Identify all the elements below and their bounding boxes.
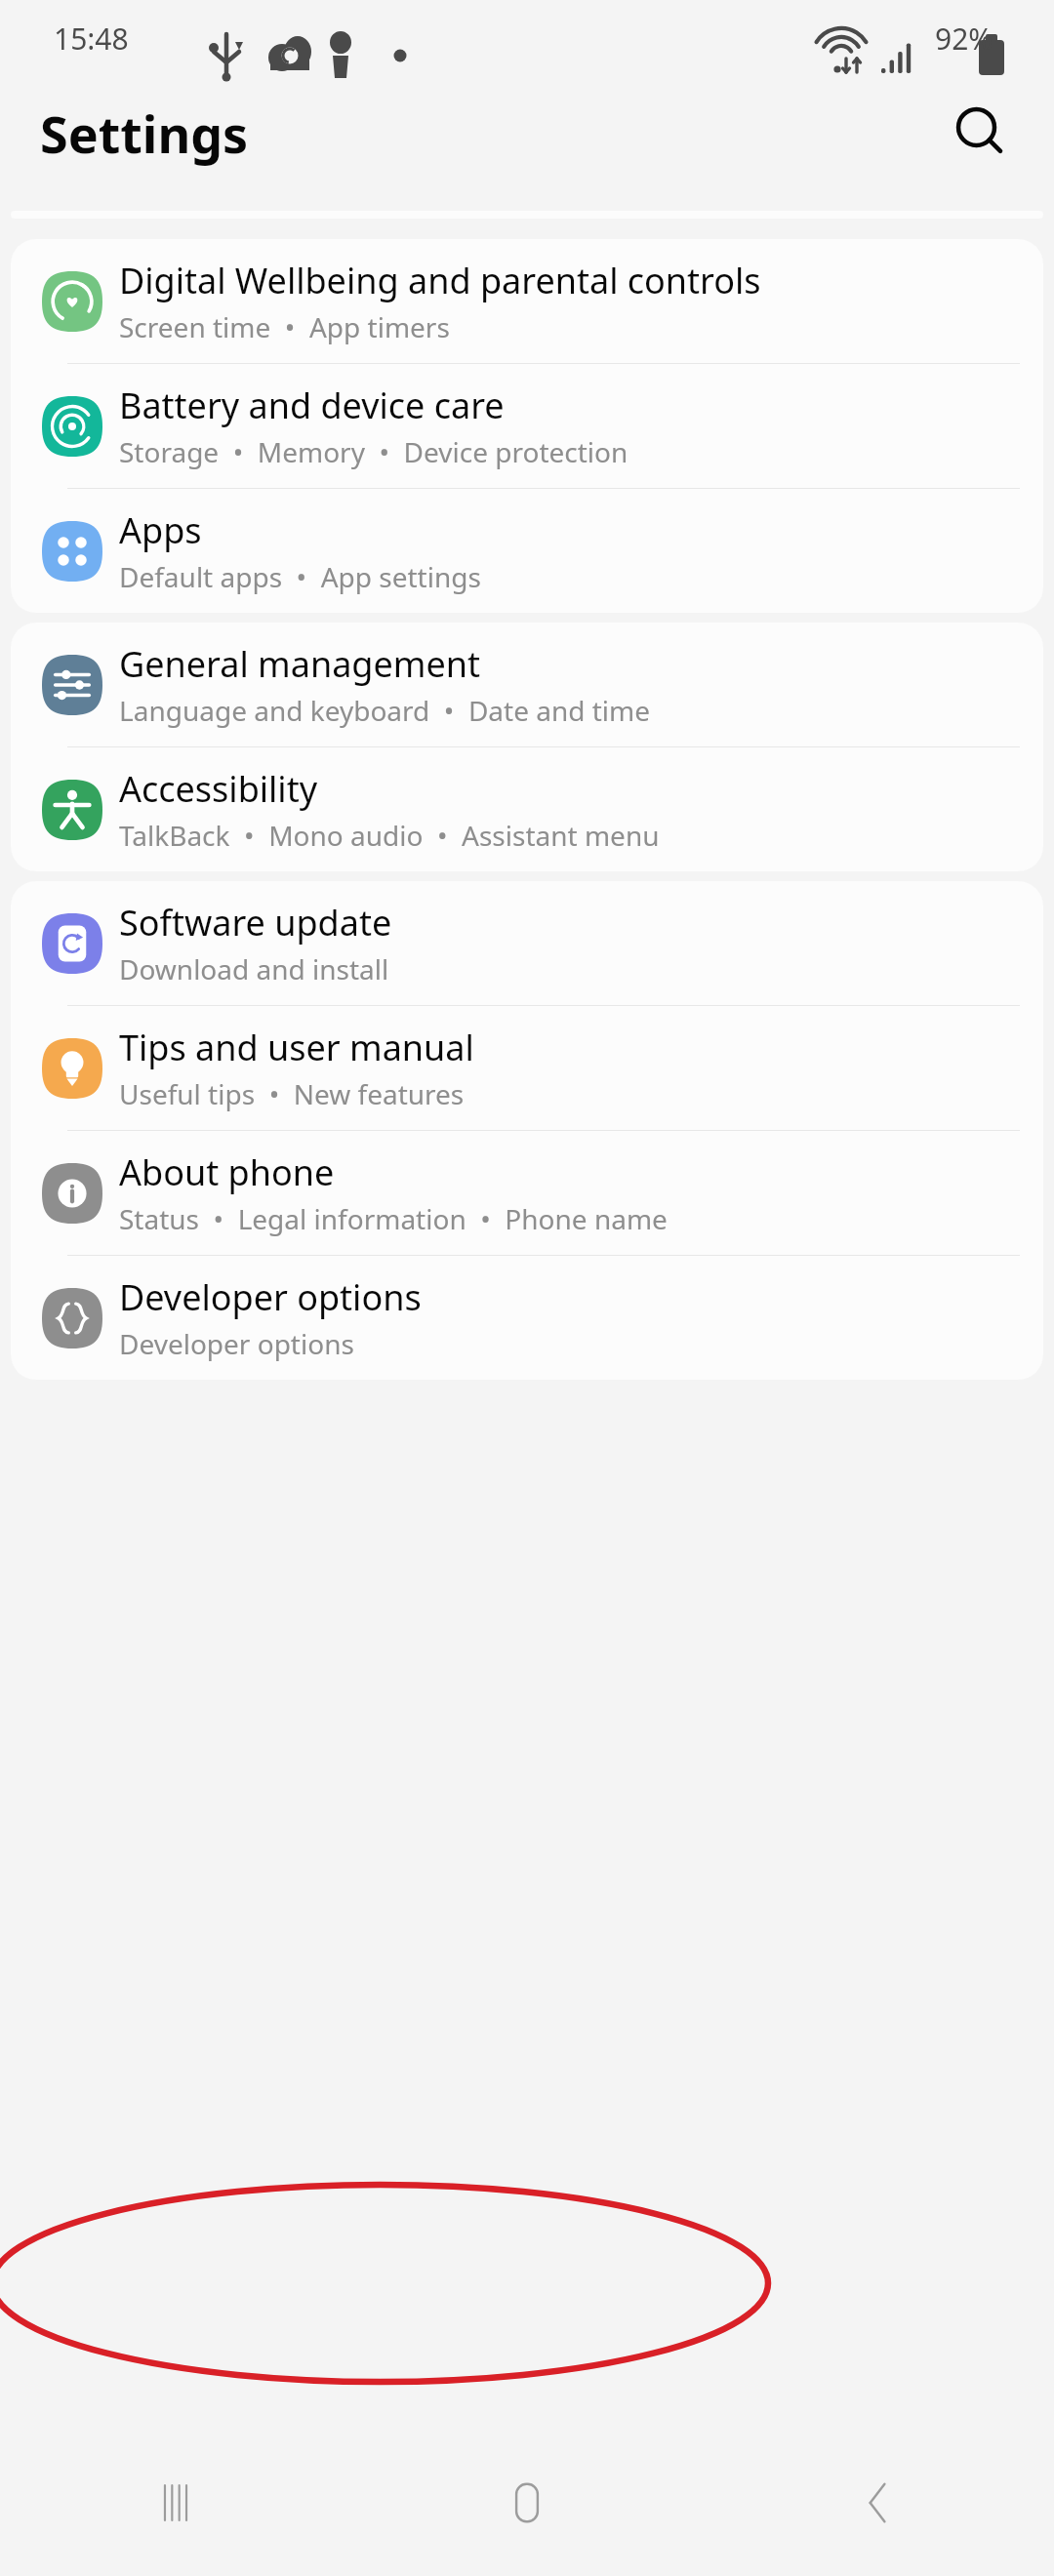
staticText: Accessibility	[119, 765, 318, 813]
staticText: Download and install	[119, 950, 389, 987]
staticText: Language and keyboard • Date and time	[119, 692, 651, 729]
staticText: Developer options	[119, 1325, 354, 1362]
button[interactable]: Software update	[11, 881, 1043, 1005]
staticText: Apps	[119, 506, 202, 554]
staticText: Tips and user manual	[119, 1024, 474, 1071]
staticText: Status • Legal information • Phone name	[119, 1200, 668, 1237]
staticText: Developer options	[119, 1273, 422, 1321]
button[interactable]: Home	[351, 2430, 703, 2576]
button[interactable]: Recents	[0, 2430, 351, 2576]
button[interactable]: Back	[703, 2430, 1054, 2576]
button[interactable]: Apps	[11, 489, 1043, 613]
staticText: Screen time • App timers	[119, 308, 450, 345]
staticText: General management	[119, 640, 481, 688]
button[interactable]: Digital Wellbeing and parental controls	[11, 239, 1043, 363]
button[interactable]: Search	[937, 89, 1025, 177]
staticText: Battery and device care	[119, 382, 505, 429]
staticText: Digital Wellbeing and parental controls	[119, 257, 761, 304]
button[interactable]: About phone	[11, 1131, 1043, 1255]
staticText: About phone	[119, 1148, 335, 1196]
button[interactable]: Developer options	[11, 1256, 1043, 1380]
staticText: Software update	[119, 899, 392, 946]
staticText: Useful tips • New features	[119, 1075, 465, 1112]
staticText: Settings	[40, 99, 249, 168]
staticText: 15:48	[54, 19, 129, 59]
button[interactable]: Accessibility	[11, 747, 1043, 871]
staticText: TalkBack • Mono audio • Assistant menu	[119, 817, 660, 854]
button[interactable]: Tips and user manual	[11, 1006, 1043, 1130]
staticText: Default apps • App settings	[119, 558, 481, 595]
button[interactable]: General management	[11, 623, 1043, 746]
staticText: 92%	[935, 19, 993, 59]
staticText: Storage • Memory • Device protection	[119, 433, 628, 470]
button[interactable]: Battery and device care	[11, 364, 1043, 488]
